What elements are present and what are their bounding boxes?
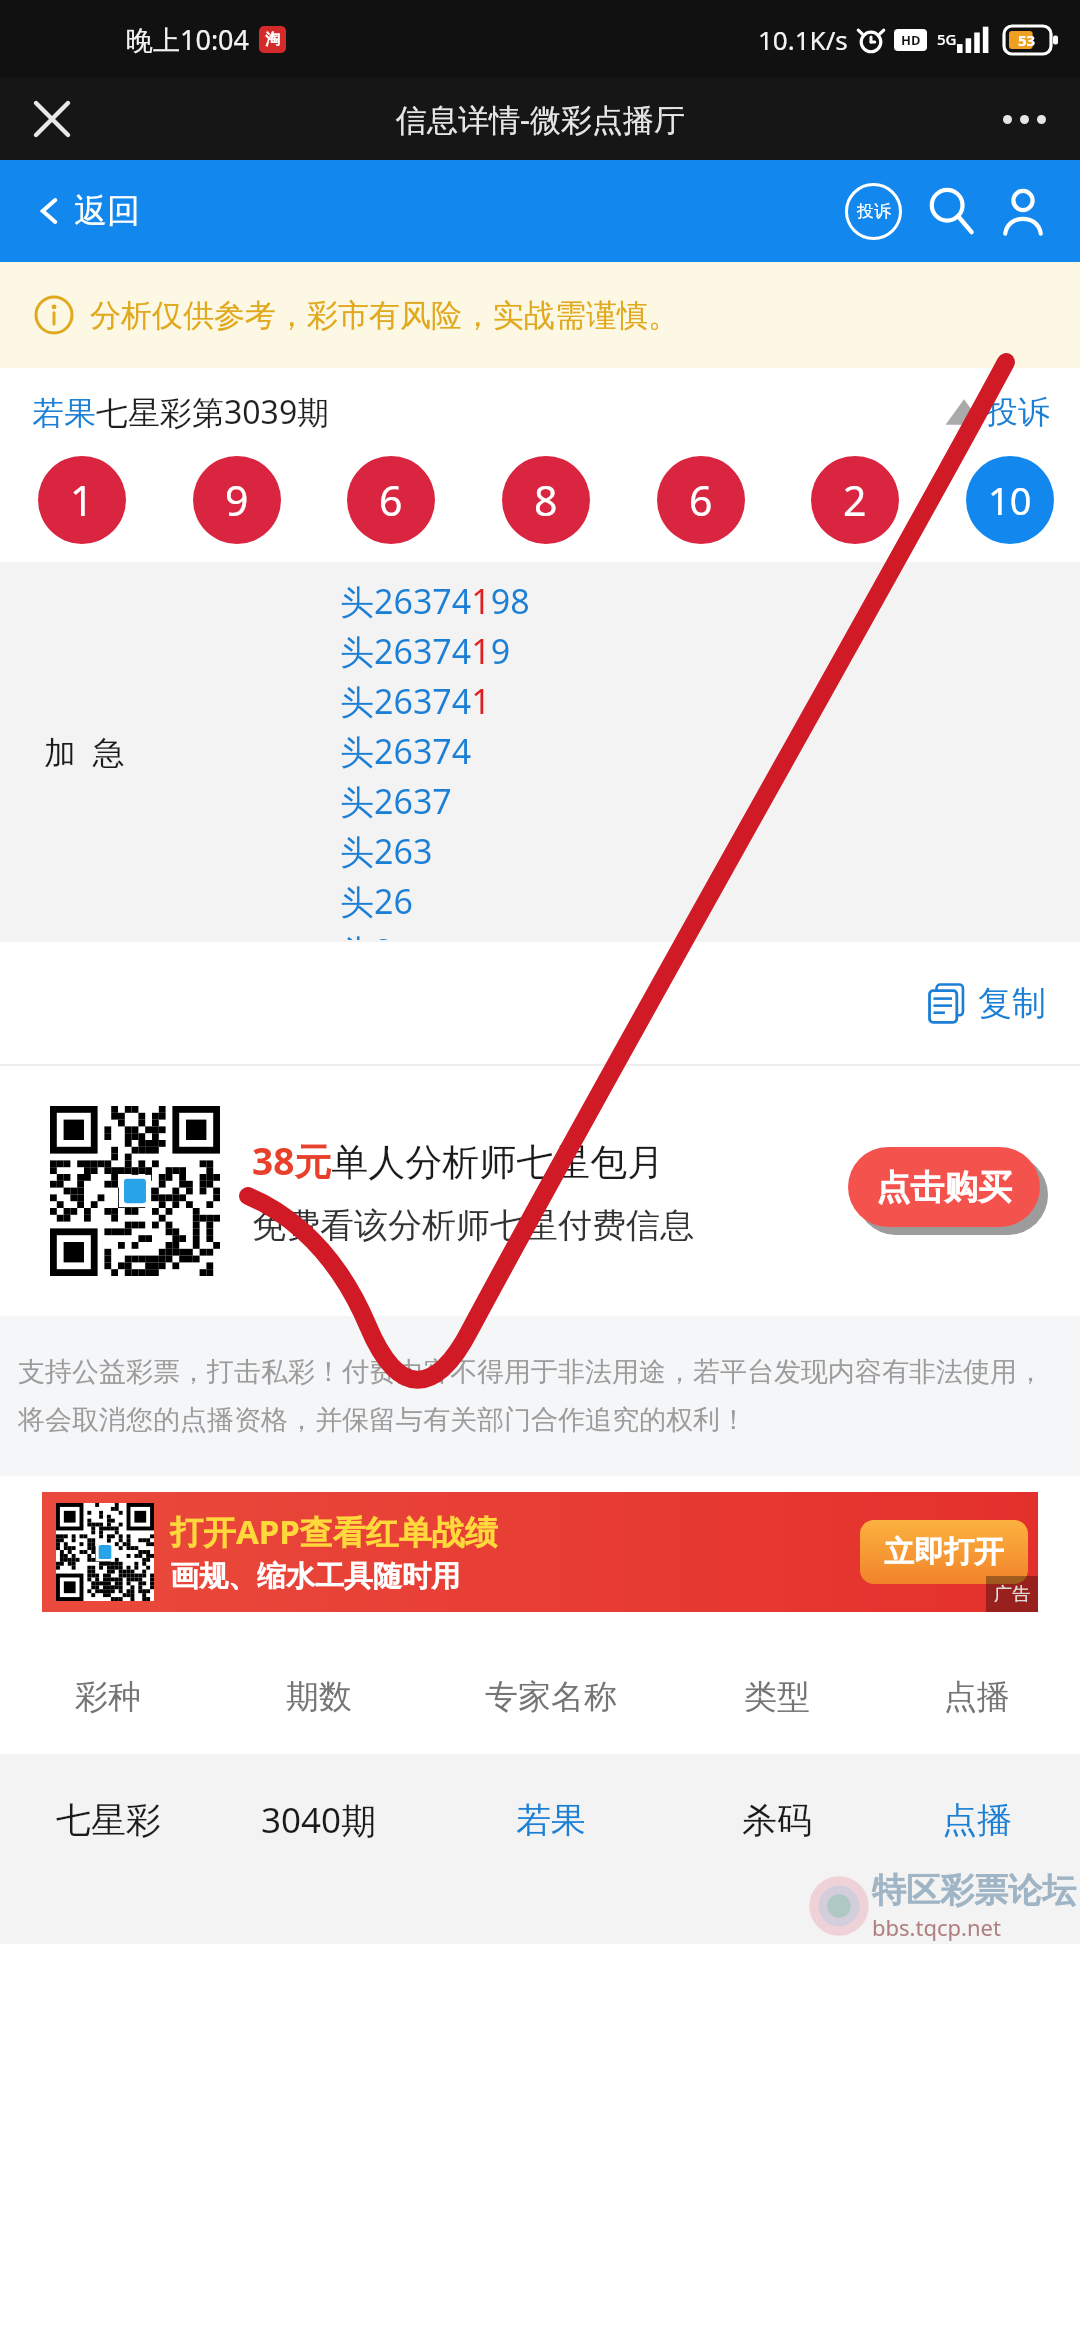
- staticText: 6: [379, 472, 403, 528]
- staticText: 点播: [942, 1798, 1012, 1842]
- button[interactable]: 返回: [36, 190, 140, 232]
- button[interactable]: Search: [918, 178, 984, 244]
- staticText: 立即打开: [884, 1533, 1004, 1571]
- staticText: 3040期: [261, 1796, 377, 1844]
- staticText: 画规、缩水工具随时用: [170, 1558, 460, 1595]
- staticText: 10: [988, 474, 1032, 526]
- staticText: bbs.tqcp.net: [872, 1912, 1001, 1942]
- staticText: 头263: [340, 828, 433, 874]
- button[interactable]: 打开APP查看红单战绩: [42, 1492, 1038, 1612]
- staticText: 杀码: [742, 1798, 812, 1842]
- staticText: 头26: [340, 878, 413, 924]
- staticText: 头263741: [340, 678, 491, 724]
- button[interactable]: More options: [992, 87, 1056, 151]
- staticText: 若果: [516, 1798, 586, 1842]
- staticText: 淘: [265, 30, 280, 49]
- button[interactable]: Close: [20, 87, 84, 151]
- staticText: 专家名称: [485, 1676, 617, 1718]
- staticText: 38元单人分析师七星包月: [252, 1135, 665, 1186]
- staticText: 返回: [74, 190, 140, 232]
- staticText: 晚上10:04: [126, 21, 250, 58]
- staticText: 头2637419: [340, 628, 511, 674]
- button[interactable]: 投诉: [840, 178, 906, 244]
- staticText: 七星彩: [56, 1798, 161, 1842]
- button[interactable]: 点播: [942, 1798, 1012, 1842]
- staticText: 信息详情-微彩点播厅: [396, 98, 685, 140]
- staticText: 特区彩票论坛: [872, 1869, 1076, 1912]
- button[interactable]: 点击购买: [848, 1147, 1040, 1227]
- staticText: 期数: [286, 1676, 352, 1718]
- staticText: 若果七星彩第3039期: [32, 390, 330, 434]
- staticText: 2: [843, 472, 867, 528]
- staticText: 投诉: [986, 392, 1050, 432]
- staticText: 53: [1018, 30, 1036, 50]
- staticText: 类型: [744, 1676, 810, 1718]
- staticText: 头26374198: [340, 578, 530, 624]
- staticText: HD: [901, 31, 921, 49]
- staticText: 广告: [994, 1583, 1030, 1606]
- staticText: 头26374: [340, 728, 472, 774]
- staticText: 点播: [944, 1676, 1010, 1718]
- staticText: 头2: [340, 928, 394, 940]
- staticText: 投诉: [857, 201, 891, 222]
- staticText: 免费看该分析师七星付费信息: [252, 1204, 694, 1247]
- staticText: 彩种: [75, 1676, 141, 1718]
- staticText: 8: [534, 472, 558, 528]
- staticText: 5G: [937, 29, 957, 49]
- staticText: 加 急: [44, 730, 125, 774]
- staticText: 6: [689, 472, 713, 528]
- button[interactable]: 投诉: [944, 392, 1050, 432]
- button[interactable]: 若果: [516, 1798, 586, 1842]
- staticText: 打开APP查看红单战绩: [170, 1509, 498, 1554]
- staticText: 9: [225, 472, 249, 528]
- staticText: 1: [70, 472, 94, 528]
- staticText: 复制: [978, 982, 1046, 1025]
- button[interactable]: 复制: [926, 981, 1046, 1025]
- staticText: 10.1K/s: [758, 22, 848, 57]
- staticText: 点击购买: [876, 1166, 1012, 1209]
- staticText: 分析仅供参考，彩市有风险，实战需谨慎。: [90, 296, 679, 335]
- staticText: 头2637: [340, 778, 452, 824]
- button[interactable]: Account: [990, 178, 1056, 244]
- staticText: 支持公益彩票，打击私彩！付费内容不得用于非法用途，若平台发现内容有非法使用，将会…: [18, 1355, 1062, 1437]
